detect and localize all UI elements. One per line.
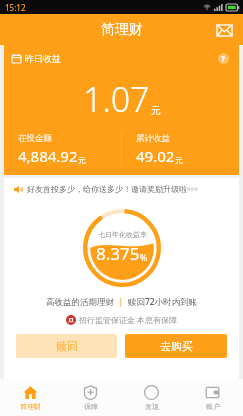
staticText: 高收益的活期理财	[46, 297, 114, 308]
staticText: %	[140, 251, 148, 263]
staticText: 8.375	[96, 242, 140, 265]
staticText: 去购买	[160, 339, 193, 353]
staticText: 账户	[206, 402, 220, 411]
staticText: »»»	[187, 184, 198, 194]
staticText: 简理财	[20, 402, 41, 411]
staticText: 49.02	[136, 146, 175, 166]
staticText: 好友首投多少，给你送多少！邀请奖励升级啦	[27, 184, 187, 194]
staticText: 元	[175, 155, 183, 165]
staticText: 1.07	[83, 76, 150, 122]
button[interactable]: Help	[215, 50, 231, 66]
button[interactable]: 保障	[60, 379, 121, 416]
staticText: 简理财	[101, 21, 143, 39]
button[interactable]: 账户	[182, 379, 243, 416]
button[interactable]: 好友首投多少，给你送多少！邀请奖励升级啦	[4, 178, 239, 200]
button[interactable]: 去购买	[125, 334, 227, 358]
staticText: 4,884.92	[18, 146, 78, 166]
button[interactable]: 简理财	[0, 379, 60, 416]
staticText: 七日年化收益率	[98, 230, 147, 239]
staticText: 保障	[84, 402, 98, 411]
button[interactable]: Messages	[213, 19, 235, 41]
staticText: 15:12	[5, 2, 26, 13]
staticText: 元	[78, 155, 86, 165]
staticText: 赎回72小时内到账	[128, 296, 198, 308]
staticText: 发现	[145, 402, 159, 411]
staticText: 元	[151, 104, 161, 117]
staticText: 赎回	[56, 339, 78, 353]
staticText: 招行监管保证金 本息有保障	[79, 314, 178, 325]
staticText: ?	[221, 53, 225, 64]
staticText: 在投金额	[18, 133, 52, 144]
button[interactable]: 发现	[121, 379, 182, 416]
staticText: 累计收益	[136, 133, 170, 144]
staticText: 昨日收益	[25, 53, 61, 64]
button[interactable]: 赎回	[16, 334, 117, 358]
staticText: |	[114, 296, 128, 308]
